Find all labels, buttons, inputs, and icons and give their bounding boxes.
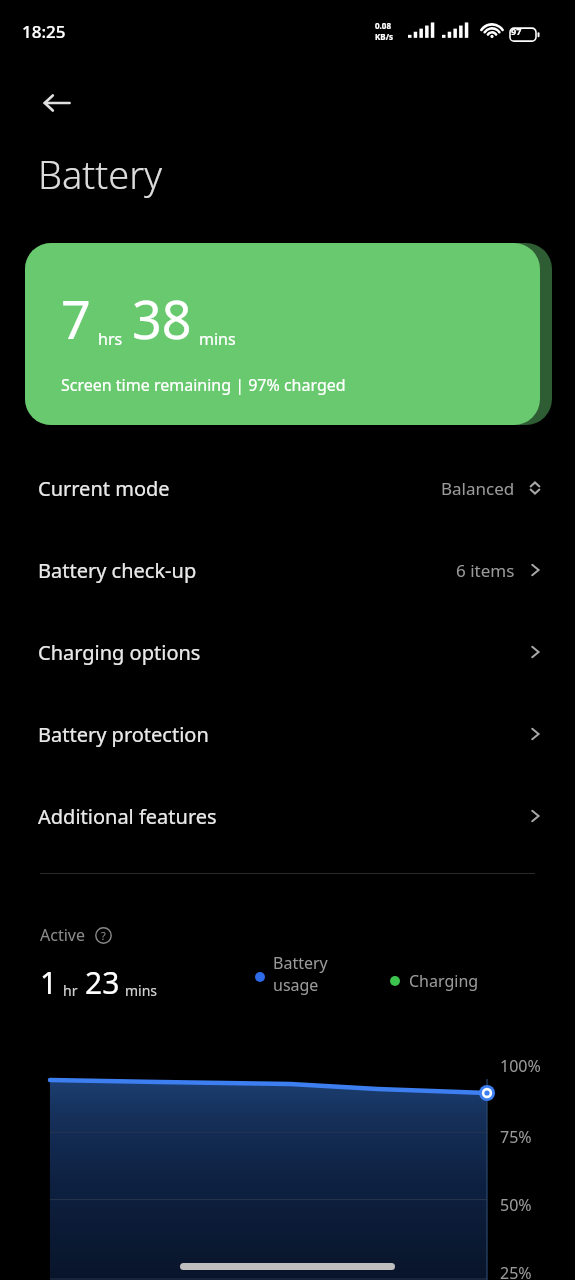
staticText: 75% <box>500 1126 532 1148</box>
button[interactable]: Back <box>26 72 88 134</box>
staticText: mins <box>199 328 236 350</box>
staticText: Active <box>40 924 85 946</box>
staticText: 23 <box>85 962 120 1003</box>
staticText: 6 items <box>456 559 515 582</box>
staticText: Additional features <box>38 803 217 830</box>
staticText: usage <box>273 974 319 996</box>
staticText: 7 <box>61 283 91 354</box>
staticText: Battery protection <box>38 721 209 748</box>
staticText: Current mode <box>38 475 170 502</box>
staticText: 50% <box>500 1194 532 1216</box>
staticText: Charging <box>409 970 479 992</box>
staticText: Balanced <box>441 477 515 500</box>
button[interactable]: Additional features <box>0 791 575 841</box>
button[interactable]: Battery protection <box>0 709 575 759</box>
staticText: 0.08 <box>375 20 391 31</box>
button[interactable]: 7 <box>25 243 540 425</box>
staticText: 100% <box>500 1055 541 1077</box>
staticText: 18:25 <box>22 20 66 43</box>
staticText: KB/s <box>375 31 393 42</box>
staticText: 97 <box>511 25 522 37</box>
staticText: hr <box>63 981 78 1000</box>
button[interactable]: Charging options <box>0 627 575 677</box>
staticText: Charging options <box>38 639 201 666</box>
button[interactable]: Battery check-up <box>0 545 575 595</box>
staticText: Screen time remaining | 97% charged <box>61 374 346 396</box>
staticText: 38 <box>132 283 192 354</box>
staticText: 25% <box>500 1262 532 1280</box>
staticText: Battery <box>273 952 328 974</box>
button[interactable]: Current mode <box>0 463 575 513</box>
staticText: Battery <box>38 148 162 200</box>
staticText: hrs <box>98 328 123 350</box>
staticText: 1 <box>40 962 58 1003</box>
staticText: Battery check-up <box>38 557 197 584</box>
button[interactable]: Help about Active <box>92 924 114 946</box>
staticText: ? <box>101 928 106 943</box>
staticText: mins <box>125 981 158 1000</box>
